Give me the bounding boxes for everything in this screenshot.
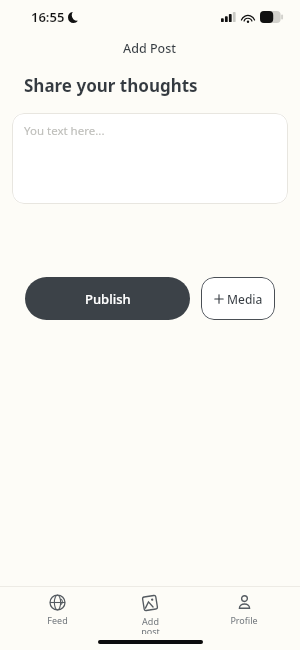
- staticText: Add Post: [123, 40, 177, 57]
- staticText: 16:55: [31, 8, 65, 26]
- staticText: Media: [227, 291, 263, 307]
- staticText: Add post: [141, 615, 160, 634]
- button[interactable]: Feed: [20, 587, 94, 626]
- staticText: You text here...: [24, 123, 105, 139]
- staticText: Share your thoughts: [24, 74, 198, 97]
- button[interactable]: Publish: [25, 277, 190, 320]
- staticText: Publish: [85, 290, 131, 308]
- button[interactable]: You text here...: [12, 113, 288, 204]
- staticText: Profile: [230, 614, 258, 626]
- button[interactable]: Profile: [207, 587, 281, 626]
- button[interactable]: Media: [201, 277, 275, 320]
- button[interactable]: Add post: [113, 587, 187, 634]
- staticText: Feed: [47, 614, 68, 626]
